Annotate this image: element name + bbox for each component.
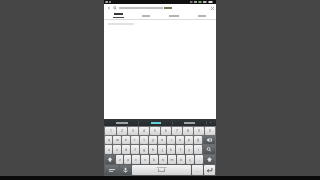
staticText: e xyxy=(125,138,127,142)
button[interactable]: Expand suggestions xyxy=(207,119,214,126)
button[interactable]: 5 xyxy=(150,127,160,135)
button[interactable]: Clear search xyxy=(208,4,216,12)
staticText: m xyxy=(170,158,174,162)
button[interactable]: x xyxy=(124,155,131,164)
staticText: w xyxy=(116,138,119,142)
staticText: f xyxy=(134,148,136,152)
staticText: i xyxy=(198,148,199,152)
button[interactable]: 9 xyxy=(194,127,204,135)
button[interactable]: . xyxy=(195,155,203,164)
button[interactable]: , xyxy=(192,165,203,175)
button[interactable]: a xyxy=(105,145,112,154)
button[interactable]: Symbols xyxy=(105,165,119,175)
staticText: . xyxy=(199,158,200,162)
staticText: d xyxy=(125,148,127,152)
button[interactable]: g xyxy=(140,145,148,154)
button[interactable]: Voice input xyxy=(120,165,131,175)
button[interactable]: v xyxy=(141,155,149,164)
button[interactable]: 6 xyxy=(161,127,171,135)
staticText: , xyxy=(197,168,198,172)
button[interactable]: z xyxy=(116,155,123,164)
staticText: ı xyxy=(171,138,172,142)
staticText: u xyxy=(161,138,163,142)
staticText: 4 xyxy=(143,129,145,133)
staticText: s xyxy=(116,148,118,152)
button[interactable]: 2 xyxy=(117,127,127,135)
button[interactable]: ö xyxy=(177,155,185,164)
button[interactable]: ç xyxy=(186,155,194,164)
button[interactable]: Space xyxy=(132,165,191,175)
staticText: c xyxy=(135,158,137,162)
button[interactable]: Shift xyxy=(204,155,215,164)
button[interactable]: q xyxy=(105,136,112,144)
button[interactable]: Enter xyxy=(204,165,215,175)
staticText: o xyxy=(179,138,181,142)
button[interactable]: y xyxy=(149,136,157,144)
button[interactable] xyxy=(132,12,160,19)
button[interactable] xyxy=(173,119,206,126)
button[interactable]: p xyxy=(185,136,193,144)
button[interactable]: ş xyxy=(185,145,193,154)
button[interactable]: s xyxy=(113,145,121,154)
staticText: ö xyxy=(180,158,182,162)
button[interactable]: j xyxy=(158,145,166,154)
button[interactable] xyxy=(106,119,138,126)
button[interactable]: i xyxy=(194,145,202,154)
button[interactable]: r xyxy=(131,136,139,144)
button[interactable]: ı xyxy=(167,136,175,144)
staticText: ç xyxy=(189,158,191,162)
staticText: x xyxy=(127,158,129,162)
button[interactable]: n xyxy=(159,155,167,164)
button[interactable] xyxy=(139,119,172,126)
button[interactable] xyxy=(188,12,216,19)
staticText: k xyxy=(170,148,172,152)
button[interactable]: w xyxy=(113,136,121,144)
button[interactable]: c xyxy=(132,155,140,164)
button[interactable]: 7 xyxy=(172,127,182,135)
button[interactable]: Shift xyxy=(105,155,115,164)
button[interactable]: b xyxy=(150,155,158,164)
staticText: p xyxy=(188,138,190,142)
button[interactable]: 4 xyxy=(139,127,149,135)
staticText: 0 xyxy=(209,129,211,133)
button[interactable]: 0 xyxy=(205,127,215,135)
staticText: a xyxy=(108,148,110,152)
button[interactable]: o xyxy=(176,136,184,144)
button[interactable]: t xyxy=(140,136,148,144)
button[interactable] xyxy=(104,12,132,19)
staticText: 5 xyxy=(154,129,156,133)
staticText: 1 xyxy=(110,129,112,133)
button[interactable] xyxy=(160,12,188,19)
button[interactable]: u xyxy=(158,136,166,144)
staticText: q xyxy=(108,138,110,142)
staticText: 6 xyxy=(165,129,167,133)
staticText: r xyxy=(134,138,136,142)
staticText: ğ xyxy=(197,138,199,142)
staticText: b xyxy=(153,158,155,162)
button[interactable]: ğ xyxy=(194,136,202,144)
staticText: z xyxy=(119,158,121,162)
button[interactable]: h xyxy=(149,145,157,154)
staticText: 3 xyxy=(132,129,134,133)
button[interactable]: f xyxy=(131,145,139,154)
button[interactable]: 3 xyxy=(128,127,138,135)
staticText: y xyxy=(152,138,154,142)
staticText: ş xyxy=(188,148,190,152)
staticText: j xyxy=(162,148,163,152)
button[interactable]: l xyxy=(176,145,184,154)
button[interactable]: k xyxy=(167,145,175,154)
button[interactable]: Backspace xyxy=(203,136,215,144)
button[interactable]: 1 xyxy=(105,127,116,135)
button[interactable] xyxy=(119,4,208,12)
staticText: g xyxy=(143,148,145,152)
button[interactable]: e xyxy=(122,136,130,144)
staticText: 7 xyxy=(176,129,178,133)
button[interactable]: d xyxy=(122,145,130,154)
button[interactable]: Back xyxy=(104,4,113,12)
staticText: t xyxy=(143,138,145,142)
button[interactable]: 8 xyxy=(183,127,193,135)
staticText: 9 xyxy=(198,129,200,133)
button[interactable]: m xyxy=(168,155,176,164)
staticText: h xyxy=(152,148,154,152)
button[interactable]: Search xyxy=(203,145,215,154)
